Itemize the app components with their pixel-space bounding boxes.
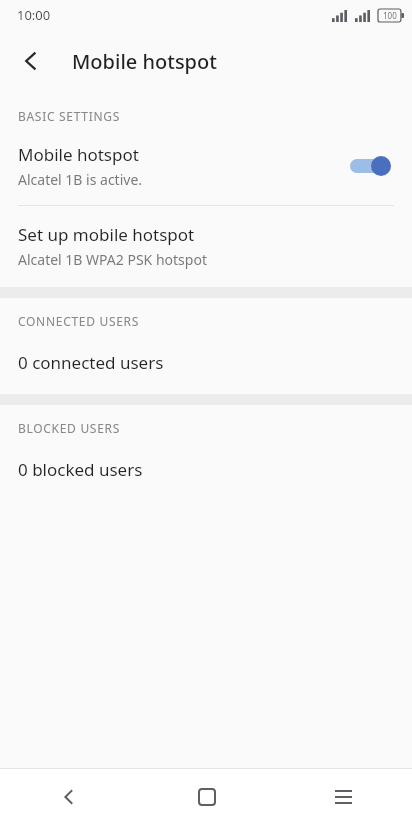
button[interactable]: Recent apps (275, 769, 412, 824)
staticText: Mobile hotspot (72, 48, 217, 75)
staticText: 100 (383, 10, 397, 21)
staticText: Alcatel 1B is active. (18, 170, 143, 189)
staticText: BLOCKED USERS (18, 420, 120, 436)
button[interactable]: 0 connected users (0, 338, 412, 394)
staticText: 10:00 (17, 6, 51, 24)
button[interactable]: Back (8, 38, 54, 84)
button[interactable]: Home (138, 769, 275, 824)
button[interactable]: Back (0, 769, 138, 824)
staticText: Alcatel 1B WPA2 PSK hotspot (18, 250, 207, 269)
staticText: CONNECTED USERS (18, 313, 140, 329)
staticText: BASIC SETTINGS (18, 108, 120, 124)
button[interactable]: 0 blocked users (0, 445, 412, 501)
staticText: 0 blocked users (18, 458, 143, 481)
staticText: Set up mobile hotspot (18, 223, 195, 246)
button[interactable]: Mobile hotspot (0, 133, 412, 205)
button[interactable]: Mobile hotspot toggle (350, 153, 394, 179)
button[interactable]: Set up mobile hotspot (0, 206, 412, 287)
staticText: 0 connected users (18, 351, 164, 374)
staticText: Mobile hotspot (18, 143, 139, 166)
